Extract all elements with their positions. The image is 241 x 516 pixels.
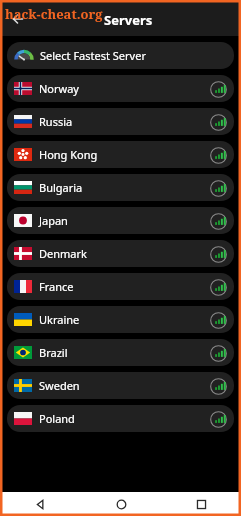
button[interactable]: Recents [161, 492, 241, 516]
button[interactable]: Bulgaria [7, 174, 234, 201]
button[interactable]: Denmark [7, 240, 234, 267]
staticText: Poland [39, 411, 207, 426]
button[interactable]: Home [81, 492, 161, 516]
button[interactable]: Poland [7, 405, 234, 432]
staticText: Japan [39, 213, 207, 228]
button[interactable]: Select Fastest Server [7, 42, 234, 69]
staticText: France [39, 279, 207, 294]
button[interactable]: Hong Kong [7, 141, 234, 168]
button[interactable]: Signal Russia [207, 111, 229, 133]
button[interactable]: Sweden [7, 372, 234, 399]
staticText: Norway [39, 81, 207, 96]
staticText: hack-cheat.org [5, 5, 103, 23]
button[interactable]: Signal Japan [207, 210, 229, 232]
button[interactable]: Japan [7, 207, 234, 234]
button[interactable]: Signal Brazil [207, 342, 229, 364]
button[interactable]: Signal Norway [207, 78, 229, 100]
button[interactable]: Russia [7, 108, 234, 135]
button[interactable]: Norway [7, 75, 234, 102]
button[interactable]: Signal Sweden [207, 375, 229, 397]
button[interactable]: Back [5, 5, 31, 31]
button[interactable]: Signal Hong Kong [207, 144, 229, 166]
button[interactable]: Signal Denmark [207, 243, 229, 265]
button[interactable]: Signal Bulgaria [207, 177, 229, 199]
button[interactable]: Ukraine [7, 306, 234, 333]
button[interactable]: France [7, 273, 234, 300]
button[interactable]: Brazil [7, 339, 234, 366]
staticText: Bulgaria [39, 180, 207, 195]
staticText: Hong Kong [39, 147, 207, 162]
staticText: Sweden [39, 378, 207, 393]
button[interactable]: Signal Ukraine [207, 309, 229, 331]
staticText: Russia [39, 114, 207, 129]
button[interactable]: Signal Poland [207, 408, 229, 430]
button[interactable]: Back [0, 492, 81, 516]
staticText: Denmark [39, 246, 207, 261]
staticText: Brazil [39, 345, 207, 360]
button[interactable]: Signal France [207, 276, 229, 298]
staticText: Select Fastest Server [40, 48, 146, 63]
staticText: Servers [104, 11, 153, 29]
staticText: Ukraine [39, 312, 207, 327]
